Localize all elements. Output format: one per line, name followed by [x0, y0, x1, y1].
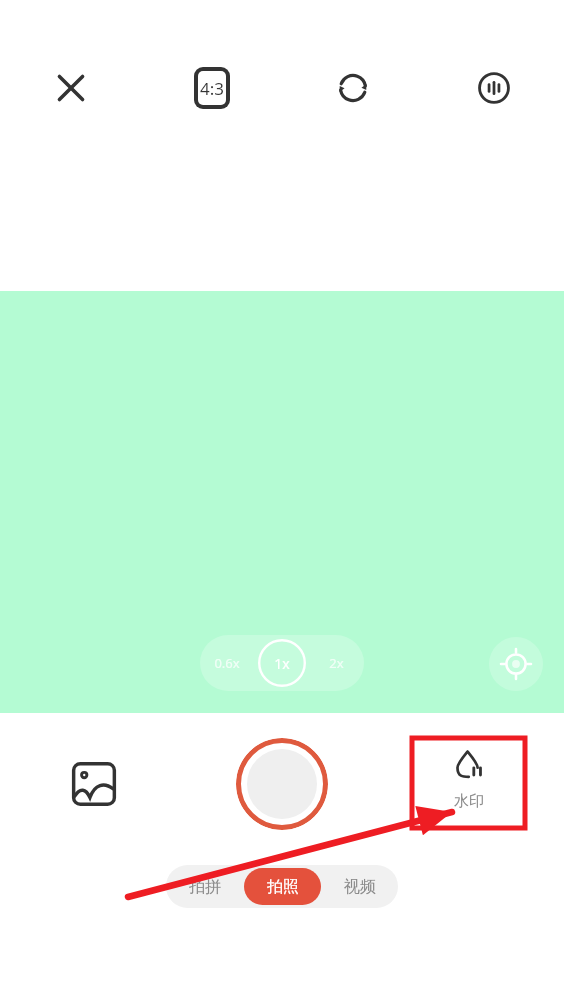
staticText: 1x: [274, 654, 290, 673]
staticText: 水印: [454, 792, 484, 811]
button[interactable]: Aspect ratio 4:3: [141, 0, 282, 176]
button[interactable]: Gallery: [62, 752, 126, 816]
button[interactable]: Close: [0, 0, 141, 176]
staticText: 视频: [344, 877, 376, 897]
button[interactable]: 0.6x: [200, 635, 254, 691]
staticText: 4:3: [200, 77, 225, 100]
staticText: 0.6x: [214, 654, 240, 672]
staticText: 拍拼: [189, 877, 221, 897]
button[interactable]: 1x: [254, 635, 309, 691]
button[interactable]: 视频: [321, 865, 398, 908]
staticText: 拍照: [267, 877, 299, 897]
button[interactable]: 拍拼: [166, 865, 244, 908]
button[interactable]: Focus: [489, 637, 543, 691]
staticText: 2x: [329, 654, 344, 672]
button[interactable]: Filters: [423, 0, 564, 176]
button[interactable]: 拍照: [244, 868, 321, 905]
button[interactable]: 2x: [309, 635, 364, 691]
button[interactable]: 水印: [436, 748, 502, 811]
button[interactable]: Shutter: [236, 738, 328, 830]
button[interactable]: Switch camera: [282, 0, 423, 176]
